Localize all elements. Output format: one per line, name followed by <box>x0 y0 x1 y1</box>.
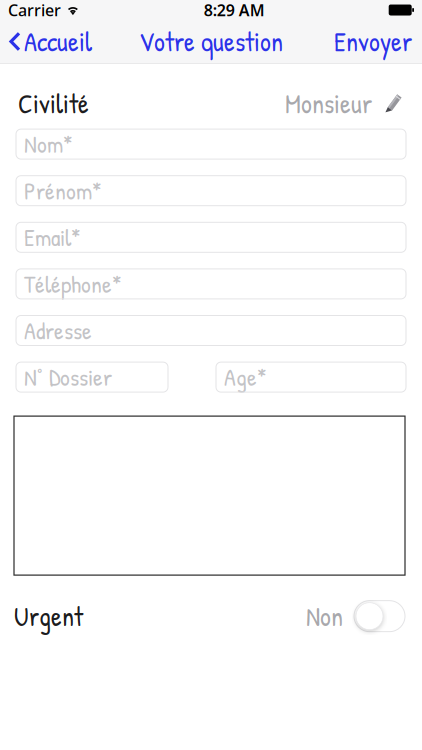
staticText: Age* <box>224 361 267 393</box>
button[interactable]: Prénom* <box>16 176 406 206</box>
button[interactable]: Nom* <box>16 129 406 159</box>
staticText: Adresse <box>24 314 92 347</box>
staticText: Votre question <box>139 23 283 59</box>
button[interactable]: Email* <box>16 222 406 252</box>
staticText: Monsieur <box>285 85 372 122</box>
staticText: Accueil <box>24 23 92 59</box>
button[interactable]: N° Dossier <box>16 362 168 392</box>
button[interactable]: Urgent <box>354 601 405 632</box>
button[interactable] <box>14 416 405 575</box>
staticText: Civilité <box>18 85 89 122</box>
staticText: Téléphone* <box>24 268 122 300</box>
button[interactable]: Accueil <box>0 17 92 65</box>
button[interactable]: Téléphone* <box>16 269 406 299</box>
staticText: Carrier <box>8 0 61 21</box>
button[interactable]: Envoyer <box>334 17 422 65</box>
staticText: Email* <box>24 221 81 254</box>
staticText: Prénom* <box>24 174 102 207</box>
button[interactable]: Age* <box>216 362 406 392</box>
button[interactable]: Monsieur <box>285 85 404 122</box>
staticText: 8:29 AM <box>204 0 265 21</box>
staticText: Urgent <box>14 598 83 634</box>
staticText: Envoyer <box>334 23 412 59</box>
staticText: Non <box>306 598 343 634</box>
staticText: Nom* <box>24 128 73 160</box>
button[interactable]: Adresse <box>16 315 406 345</box>
staticText: N° Dossier <box>24 361 112 393</box>
